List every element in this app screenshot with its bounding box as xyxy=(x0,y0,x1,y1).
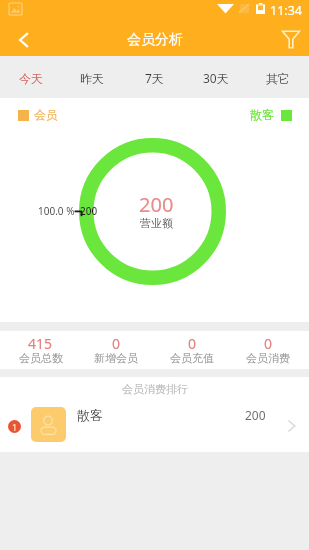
button[interactable]: 其它 xyxy=(247,56,309,98)
staticText: 0 xyxy=(112,334,121,353)
staticText: 会员消费 xyxy=(246,351,290,365)
button[interactable]: 1 xyxy=(0,398,309,452)
staticText: 营业额 xyxy=(140,216,173,230)
staticText: 会员总数 xyxy=(19,351,63,365)
staticText: 200 xyxy=(245,407,266,423)
staticText: 200 xyxy=(139,191,174,218)
staticText: 100.0 % xyxy=(38,204,75,218)
staticText: 会员消费排行 xyxy=(122,382,188,396)
staticText: 7天 xyxy=(145,70,164,86)
button[interactable]: Filter xyxy=(271,18,309,56)
staticText: 其它 xyxy=(266,71,290,86)
staticText: 散客 xyxy=(77,407,103,423)
staticText: 200 xyxy=(80,204,98,218)
button[interactable]: 7天 xyxy=(123,56,185,98)
button[interactable]: 30天 xyxy=(185,56,247,98)
staticText: 415 xyxy=(28,334,53,353)
button[interactable]: Back xyxy=(0,18,46,56)
staticText: 30天 xyxy=(203,70,229,86)
staticText: 会员充值 xyxy=(170,351,214,365)
staticText: 昨天 xyxy=(80,71,104,86)
button[interactable]: 0 xyxy=(230,331,306,369)
staticText: 11:34 xyxy=(270,2,302,19)
staticText: 1 xyxy=(12,421,18,433)
staticText: 今天 xyxy=(19,71,43,86)
staticText: 0 xyxy=(264,334,273,353)
staticText: 散客 xyxy=(250,107,274,122)
button[interactable]: 0 xyxy=(154,331,230,369)
button[interactable]: 415 xyxy=(3,331,78,369)
button[interactable]: 今天 xyxy=(0,56,61,98)
button[interactable]: 昨天 xyxy=(61,56,123,98)
button[interactable]: 0 xyxy=(78,331,154,369)
staticText: 0 xyxy=(188,334,197,353)
staticText: 新增会员 xyxy=(94,351,138,365)
staticText: 会员 xyxy=(34,107,58,122)
staticText: 会员分析 xyxy=(127,31,183,49)
